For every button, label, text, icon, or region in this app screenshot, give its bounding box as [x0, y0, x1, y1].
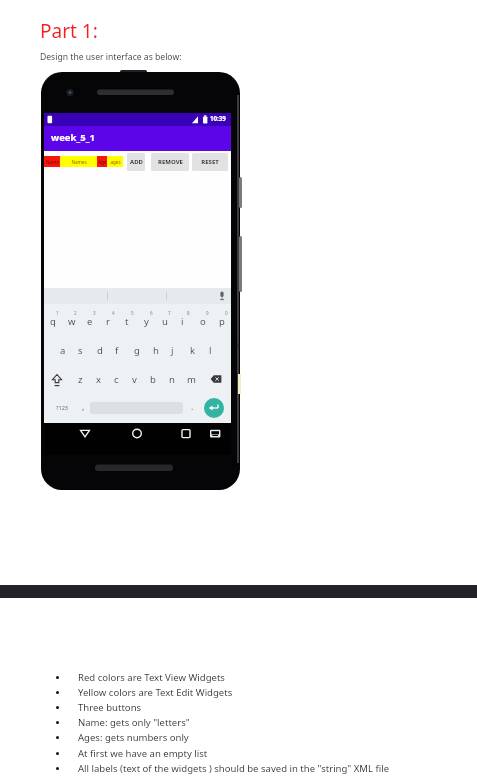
staticText: , — [82, 401, 85, 413]
staticText: ?123 — [56, 404, 69, 412]
staticText: e — [87, 315, 93, 328]
button[interactable]: REMOVE — [151, 153, 189, 171]
button[interactable]: Names — [60, 156, 98, 167]
staticText: r — [106, 315, 110, 328]
staticText: n — [169, 373, 175, 386]
staticText: Design the user interface as below: — [40, 51, 182, 63]
staticText: g — [134, 344, 140, 357]
staticText: i — [181, 315, 184, 328]
staticText: At first we have an empty list — [78, 747, 208, 760]
button[interactable]: RESET — [192, 153, 228, 171]
staticText: Name: gets only "letters" — [78, 716, 190, 729]
staticText: l — [209, 344, 212, 357]
staticText: w — [68, 315, 76, 328]
button[interactable]: Age — [97, 156, 107, 167]
staticText: h — [153, 344, 159, 357]
staticText: Yellow colors are Text Edit Widgets — [78, 686, 233, 699]
staticText: All labels (text of the widgets ) should… — [78, 762, 390, 775]
staticText: Three buttons — [78, 701, 142, 714]
staticText: m — [187, 373, 196, 386]
staticText: u — [162, 315, 168, 328]
staticText: 9 — [206, 310, 209, 316]
button[interactable]: Name — [44, 156, 60, 167]
staticText: t — [237, 341, 240, 351]
staticText: Name — [46, 159, 59, 165]
staticText: k — [190, 344, 196, 357]
button[interactable]: ADD — [127, 153, 145, 171]
staticText: Ages: gets numbers only — [78, 731, 189, 744]
staticText: j — [171, 344, 174, 357]
staticText: 10:39 — [210, 114, 226, 122]
staticText: d — [97, 344, 103, 357]
staticText: q — [50, 315, 56, 328]
staticText: . — [191, 401, 194, 413]
staticText: 6 — [150, 310, 153, 316]
staticText: z — [78, 373, 83, 386]
staticText: x — [96, 373, 102, 386]
button[interactable] — [204, 398, 224, 418]
staticText: 7 — [168, 310, 171, 316]
staticText: 0 — [225, 310, 228, 316]
staticText: c — [114, 373, 119, 386]
staticText: 5 — [131, 310, 134, 316]
staticText: 8 — [187, 310, 190, 316]
staticText: y — [144, 315, 149, 328]
staticText: p — [219, 315, 225, 328]
staticText: a — [60, 344, 66, 357]
staticText: ages — [110, 159, 121, 165]
button[interactable]: ages — [107, 156, 123, 167]
staticText: RESET — [201, 158, 219, 166]
staticText: f — [115, 344, 119, 357]
staticText: week_5_1 — [51, 131, 96, 144]
staticText: Part 1: — [40, 18, 98, 44]
staticText: t — [125, 315, 129, 328]
staticText: o — [200, 315, 206, 328]
staticText: 4 — [112, 310, 115, 316]
staticText: Names — [71, 159, 87, 165]
staticText: Red colors are Text View Widgets — [78, 671, 225, 684]
staticText: 2 — [74, 310, 77, 316]
staticText: s — [78, 344, 83, 357]
staticText: b — [150, 373, 156, 386]
staticText: 3 — [93, 310, 96, 316]
staticText: v — [132, 373, 137, 386]
staticText: Age — [98, 159, 107, 165]
staticText: 1 — [56, 310, 59, 316]
staticText: REMOVE — [158, 158, 183, 166]
staticText: ADD — [130, 158, 143, 166]
